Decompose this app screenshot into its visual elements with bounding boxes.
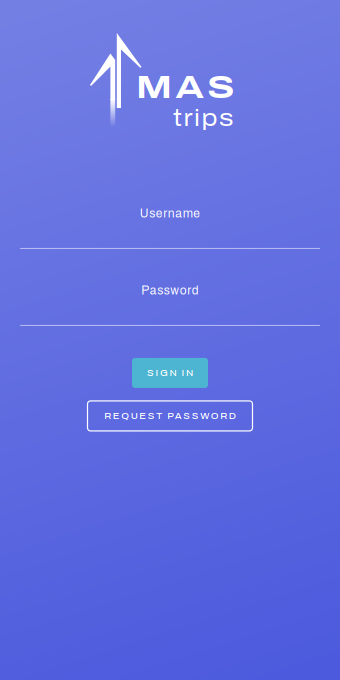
button[interactable]: REQUEST PASSWORD: [87, 401, 252, 431]
staticText: Password: [141, 284, 199, 297]
staticText: MAS: [136, 70, 234, 105]
button[interactable]: SIGN IN: [132, 358, 208, 388]
staticText: SIGN IN: [147, 368, 193, 378]
staticText: Username: [140, 207, 200, 220]
staticText: REQUEST PASSWORD: [104, 411, 236, 421]
staticText: trips: [173, 105, 234, 131]
